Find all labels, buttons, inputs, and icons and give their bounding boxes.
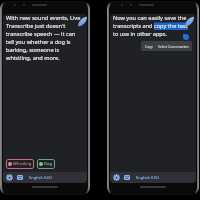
staticText: With new sound events, Live Transcribe j… <box>6 14 82 62</box>
staticText: Dog <box>44 161 53 167</box>
button[interactable]: Keyboard <box>124 175 130 180</box>
button[interactable]: English (US) <box>136 175 159 181</box>
staticText: Whistling <box>13 161 32 167</box>
other: Pointer <box>183 15 196 28</box>
button[interactable]: Settings <box>6 174 13 181</box>
button[interactable]: Keyboard <box>17 175 23 180</box>
button[interactable]: English (US) <box>29 175 52 181</box>
button[interactable]: Settings <box>113 174 120 181</box>
staticText: Now you can easily save the transcripts … <box>113 14 189 38</box>
other: Pointer <box>76 15 88 28</box>
button[interactable]: Dog <box>37 159 55 169</box>
button[interactable]: Select Conversation <box>158 44 189 48</box>
button[interactable]: Whistling <box>6 159 34 169</box>
button[interactable]: Copy <box>145 44 153 48</box>
